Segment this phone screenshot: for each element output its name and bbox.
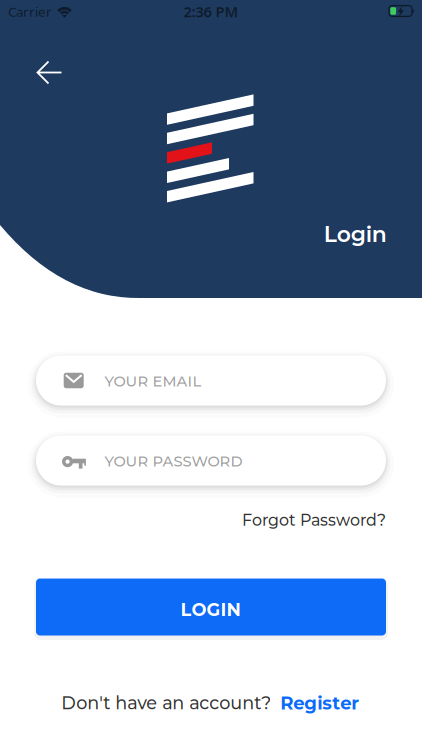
staticText: Carrier <box>8 3 52 20</box>
staticText: YOUR PASSWORD <box>104 452 242 470</box>
button[interactable]: Forgot Password? <box>242 510 386 530</box>
staticText: Login <box>324 221 387 248</box>
staticText: Forgot Password? <box>242 510 386 530</box>
button[interactable]: Register <box>280 692 359 714</box>
staticText: Register <box>280 692 359 714</box>
button[interactable]: Your password <box>36 435 386 485</box>
staticText: Don't have an account? <box>61 692 271 714</box>
button[interactable]: Back <box>36 60 62 84</box>
button[interactable]: Your email <box>36 355 386 405</box>
button[interactable]: LOGIN <box>36 578 386 635</box>
staticText: 2:36 PM <box>183 2 238 21</box>
staticText: YOUR EMAIL <box>104 372 201 390</box>
staticText: LOGIN <box>180 599 240 620</box>
